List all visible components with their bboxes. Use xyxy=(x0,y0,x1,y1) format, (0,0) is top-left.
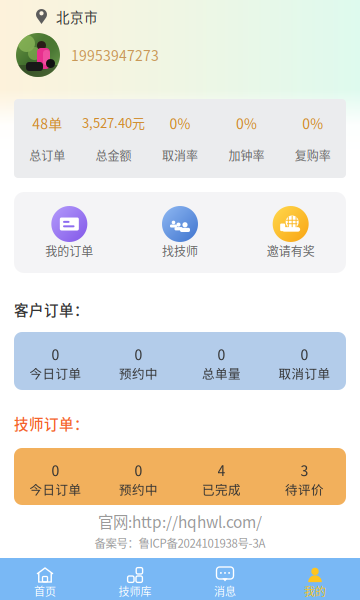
staticText: 预约中 xyxy=(119,364,158,382)
staticText: 0 xyxy=(134,344,142,364)
staticText: 0 xyxy=(217,344,225,364)
staticText: 0% xyxy=(169,113,190,133)
staticText: 技师库 xyxy=(118,583,151,599)
staticText: 复购率 xyxy=(295,147,331,164)
staticText: 0% xyxy=(302,113,323,133)
staticText: 总单量 xyxy=(202,364,241,382)
button[interactable]: 我的 xyxy=(270,558,360,600)
staticText: 取消率 xyxy=(162,147,198,164)
staticText: 待评价 xyxy=(285,480,324,498)
button[interactable]: 首页 xyxy=(0,558,90,600)
staticText: 找技师 xyxy=(162,242,198,259)
staticText: 0 xyxy=(51,344,59,364)
button[interactable]: 邀请有奖 xyxy=(235,206,346,258)
staticText: 预约中 xyxy=(119,480,158,498)
button[interactable]: 找技师 xyxy=(125,206,235,258)
button[interactable]: 消息 xyxy=(180,558,270,600)
staticText: 取消订单 xyxy=(278,364,330,382)
staticText: 我的订单 xyxy=(45,242,93,259)
staticText: 总金额 xyxy=(96,147,132,164)
staticText: 客户订单： xyxy=(14,299,89,320)
staticText: 3,527.40元 xyxy=(82,113,145,132)
staticText: 北京市 xyxy=(56,7,98,26)
staticText: 0 xyxy=(134,460,142,480)
staticText: 0 xyxy=(51,460,59,480)
staticText: 3 xyxy=(300,460,308,480)
staticText: 今日订单 xyxy=(29,364,81,382)
staticText: 邀请有奖 xyxy=(267,242,315,259)
staticText: 消息 xyxy=(214,583,236,599)
staticText: 48单 xyxy=(32,113,62,133)
staticText: 已完成 xyxy=(202,480,241,498)
button[interactable]: 技师库 xyxy=(90,558,180,600)
staticText: 总订单 xyxy=(29,147,65,164)
staticText: 我的 xyxy=(304,583,326,599)
staticText: 加钟率 xyxy=(228,147,264,164)
staticText: 技师订单： xyxy=(14,413,89,434)
staticText: 0 xyxy=(300,344,308,364)
staticText: 备案号：鲁ICP备2024101938号-3A xyxy=(94,534,265,551)
button[interactable]: 我的订单 xyxy=(14,206,125,258)
staticText: 4 xyxy=(217,460,225,480)
staticText: 首页 xyxy=(34,583,56,599)
staticText: 官网:http://hqhwl.com/ xyxy=(98,510,262,532)
staticText: 19953947273 xyxy=(71,45,159,65)
staticText: 今日订单 xyxy=(29,480,81,498)
staticText: 0% xyxy=(236,113,257,133)
